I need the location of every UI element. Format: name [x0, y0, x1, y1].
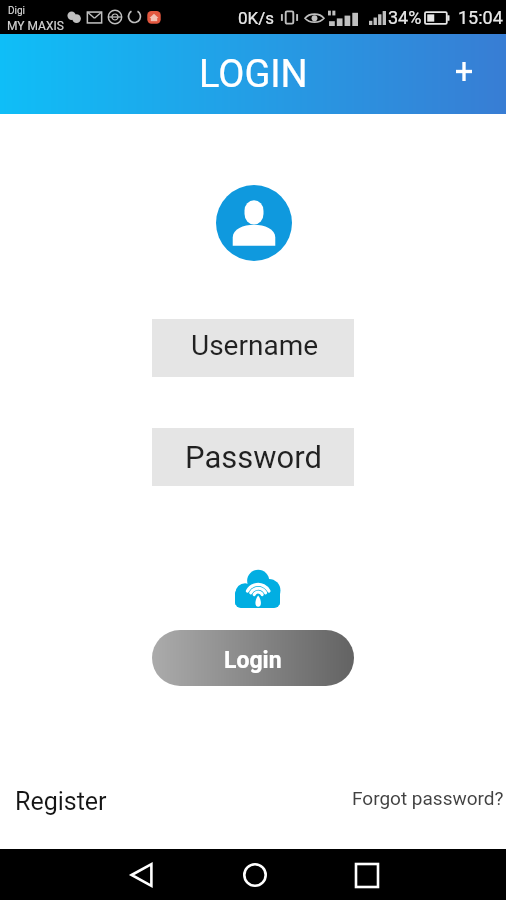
staticText: 0K/s	[238, 8, 275, 28]
button[interactable]: Login	[152, 630, 354, 686]
other: Cloud connection	[235, 568, 280, 608]
staticText: Password	[185, 439, 322, 475]
button[interactable]: Add	[443, 50, 485, 92]
staticText: Digi	[8, 5, 26, 17]
staticText: 15:04	[458, 7, 503, 28]
staticText: Username	[191, 329, 319, 362]
button[interactable]: Forgot password?	[340, 781, 506, 815]
staticText: Forgot password?	[352, 787, 504, 809]
button[interactable]: Profile	[216, 185, 292, 261]
button[interactable]: Username	[152, 319, 354, 377]
button[interactable]: Register	[3, 781, 119, 822]
staticText: MY MAXIS	[7, 19, 64, 33]
button[interactable]: Back	[119, 853, 163, 897]
staticText: Register	[15, 787, 107, 816]
button[interactable]: Home	[233, 853, 277, 897]
staticText: LOGIN	[199, 52, 308, 97]
staticText: 34%	[388, 7, 422, 28]
staticText: Login	[224, 647, 282, 674]
button[interactable]: Recent apps	[345, 853, 389, 897]
button[interactable]: Password	[152, 428, 354, 486]
